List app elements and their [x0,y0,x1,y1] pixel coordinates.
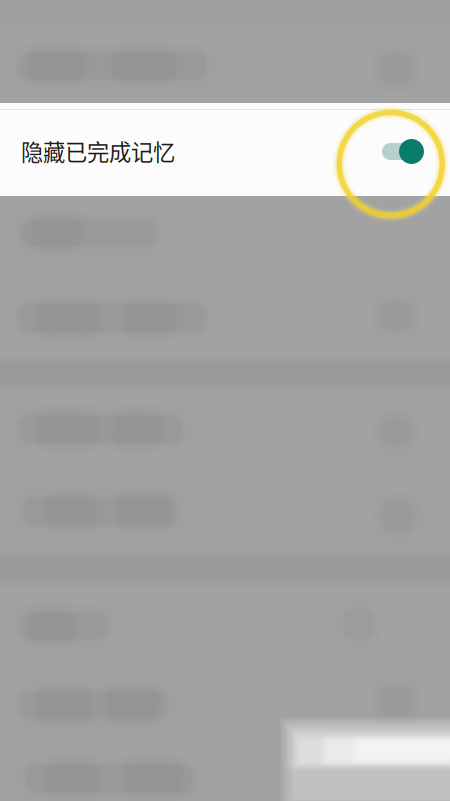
staticText: 隐藏已完成记忆 [21,135,175,167]
button[interactable]: 隐藏已完成记忆 [0,103,450,196]
